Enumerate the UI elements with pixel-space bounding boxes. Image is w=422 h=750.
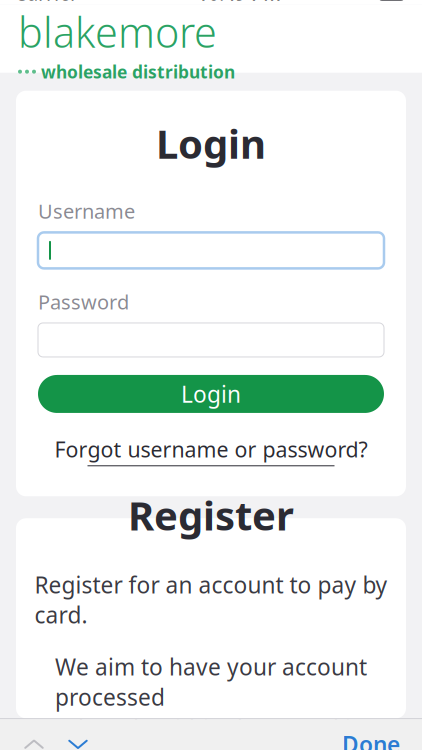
staticText: Username (38, 198, 135, 224)
staticText: Carrier (14, 0, 78, 6)
staticText: Forgot username or password? (54, 435, 367, 463)
staticText: wholesale distribution (41, 60, 235, 83)
button[interactable]: Done (332, 722, 410, 750)
staticText: Register (128, 488, 294, 541)
staticText: blakemore (18, 4, 217, 59)
button[interactable]: Previous field (12, 722, 56, 750)
button[interactable]: Forgot username or password? (38, 429, 384, 472)
staticText: Login (156, 117, 266, 170)
staticText: We aim to have your account processed (55, 652, 367, 712)
button[interactable]: Next field (56, 722, 100, 750)
staticText: 10:49 PM (197, 0, 281, 6)
staticText: Login (181, 379, 241, 409)
staticText: Done (342, 729, 400, 750)
staticText: and ready within three working days. (43, 714, 379, 750)
staticText: Password (38, 288, 129, 315)
button[interactable]: Login (38, 375, 384, 413)
staticText: Register for an account to pay by card. (34, 569, 387, 630)
